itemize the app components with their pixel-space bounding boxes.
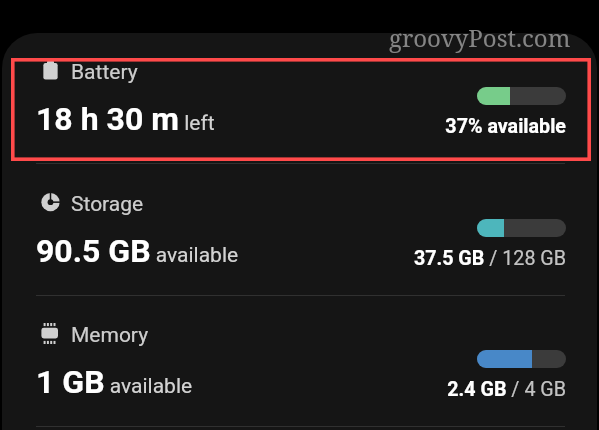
staticText: 18 h 30 m left — [36, 100, 215, 138]
staticText: 37% available — [445, 115, 566, 138]
button[interactable]: Storage — [0, 187, 599, 318]
other: Memory — [41, 323, 60, 344]
staticText: 37.5 GB / 128 GB — [413, 247, 566, 270]
other: Storage — [41, 192, 60, 213]
button[interactable]: Memory — [0, 318, 599, 430]
staticText: 2.4 GB / 4 GB — [447, 378, 566, 401]
staticText: groovyPost.com — [389, 21, 571, 54]
staticText: 1 GB available — [36, 363, 193, 401]
button[interactable]: Battery — [0, 55, 599, 186]
staticText: Memory — [71, 323, 149, 348]
staticText: Battery — [71, 60, 138, 85]
other: Battery — [41, 61, 60, 82]
staticText: Storage — [71, 192, 144, 217]
staticText: 90.5 GB available — [36, 232, 239, 270]
